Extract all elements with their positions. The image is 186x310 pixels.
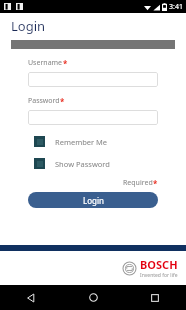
button[interactable]: Remember Me [28, 136, 158, 147]
staticText: Login [11, 17, 46, 35]
button[interactable]: Home [62, 285, 124, 310]
staticText: * [153, 178, 158, 189]
staticText: Invented for life [140, 272, 178, 279]
button[interactable] [28, 110, 158, 125]
button[interactable]: Recent apps [124, 285, 186, 310]
button[interactable]: Show Password [28, 158, 158, 169]
staticText: 3:41 [169, 2, 183, 12]
button[interactable]: Back [0, 285, 62, 310]
staticText: Username [28, 58, 63, 68]
staticText: Login [83, 195, 104, 206]
staticText: Password [28, 96, 60, 106]
staticText: BOSCH [140, 257, 178, 272]
staticText: Show Password [55, 159, 110, 169]
button[interactable] [28, 72, 158, 87]
button[interactable]: Login [28, 192, 158, 208]
staticText: * [63, 58, 68, 69]
staticText: Required [123, 178, 153, 188]
staticText: * [60, 96, 65, 107]
staticText: Remember Me [55, 137, 108, 147]
